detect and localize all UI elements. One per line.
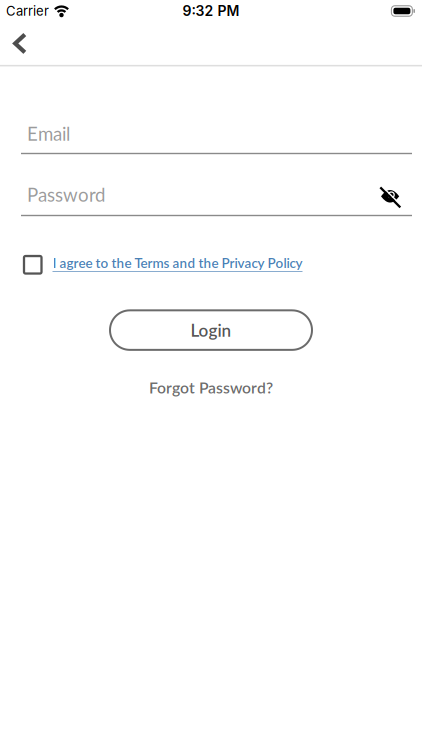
button[interactable]: I agree to the Terms and the Privacy Pol… bbox=[24, 256, 41, 273]
button[interactable]: Back bbox=[13, 33, 27, 54]
staticText: Password bbox=[27, 183, 105, 206]
button[interactable]: Show password bbox=[378, 184, 402, 208]
staticText: Carrier bbox=[6, 3, 49, 19]
staticText: Login bbox=[190, 320, 231, 340]
staticText: Email bbox=[27, 122, 70, 145]
button[interactable]: Login bbox=[110, 310, 312, 350]
staticText: Forgot Password? bbox=[149, 378, 273, 397]
staticText: I agree to the Terms and the Privacy Pol… bbox=[52, 255, 302, 271]
staticText: 9:32 PM bbox=[182, 2, 239, 19]
button[interactable]: I agree to the Terms and the Privacy Pol… bbox=[52, 255, 302, 275]
button[interactable]: Forgot Password? bbox=[149, 378, 273, 397]
